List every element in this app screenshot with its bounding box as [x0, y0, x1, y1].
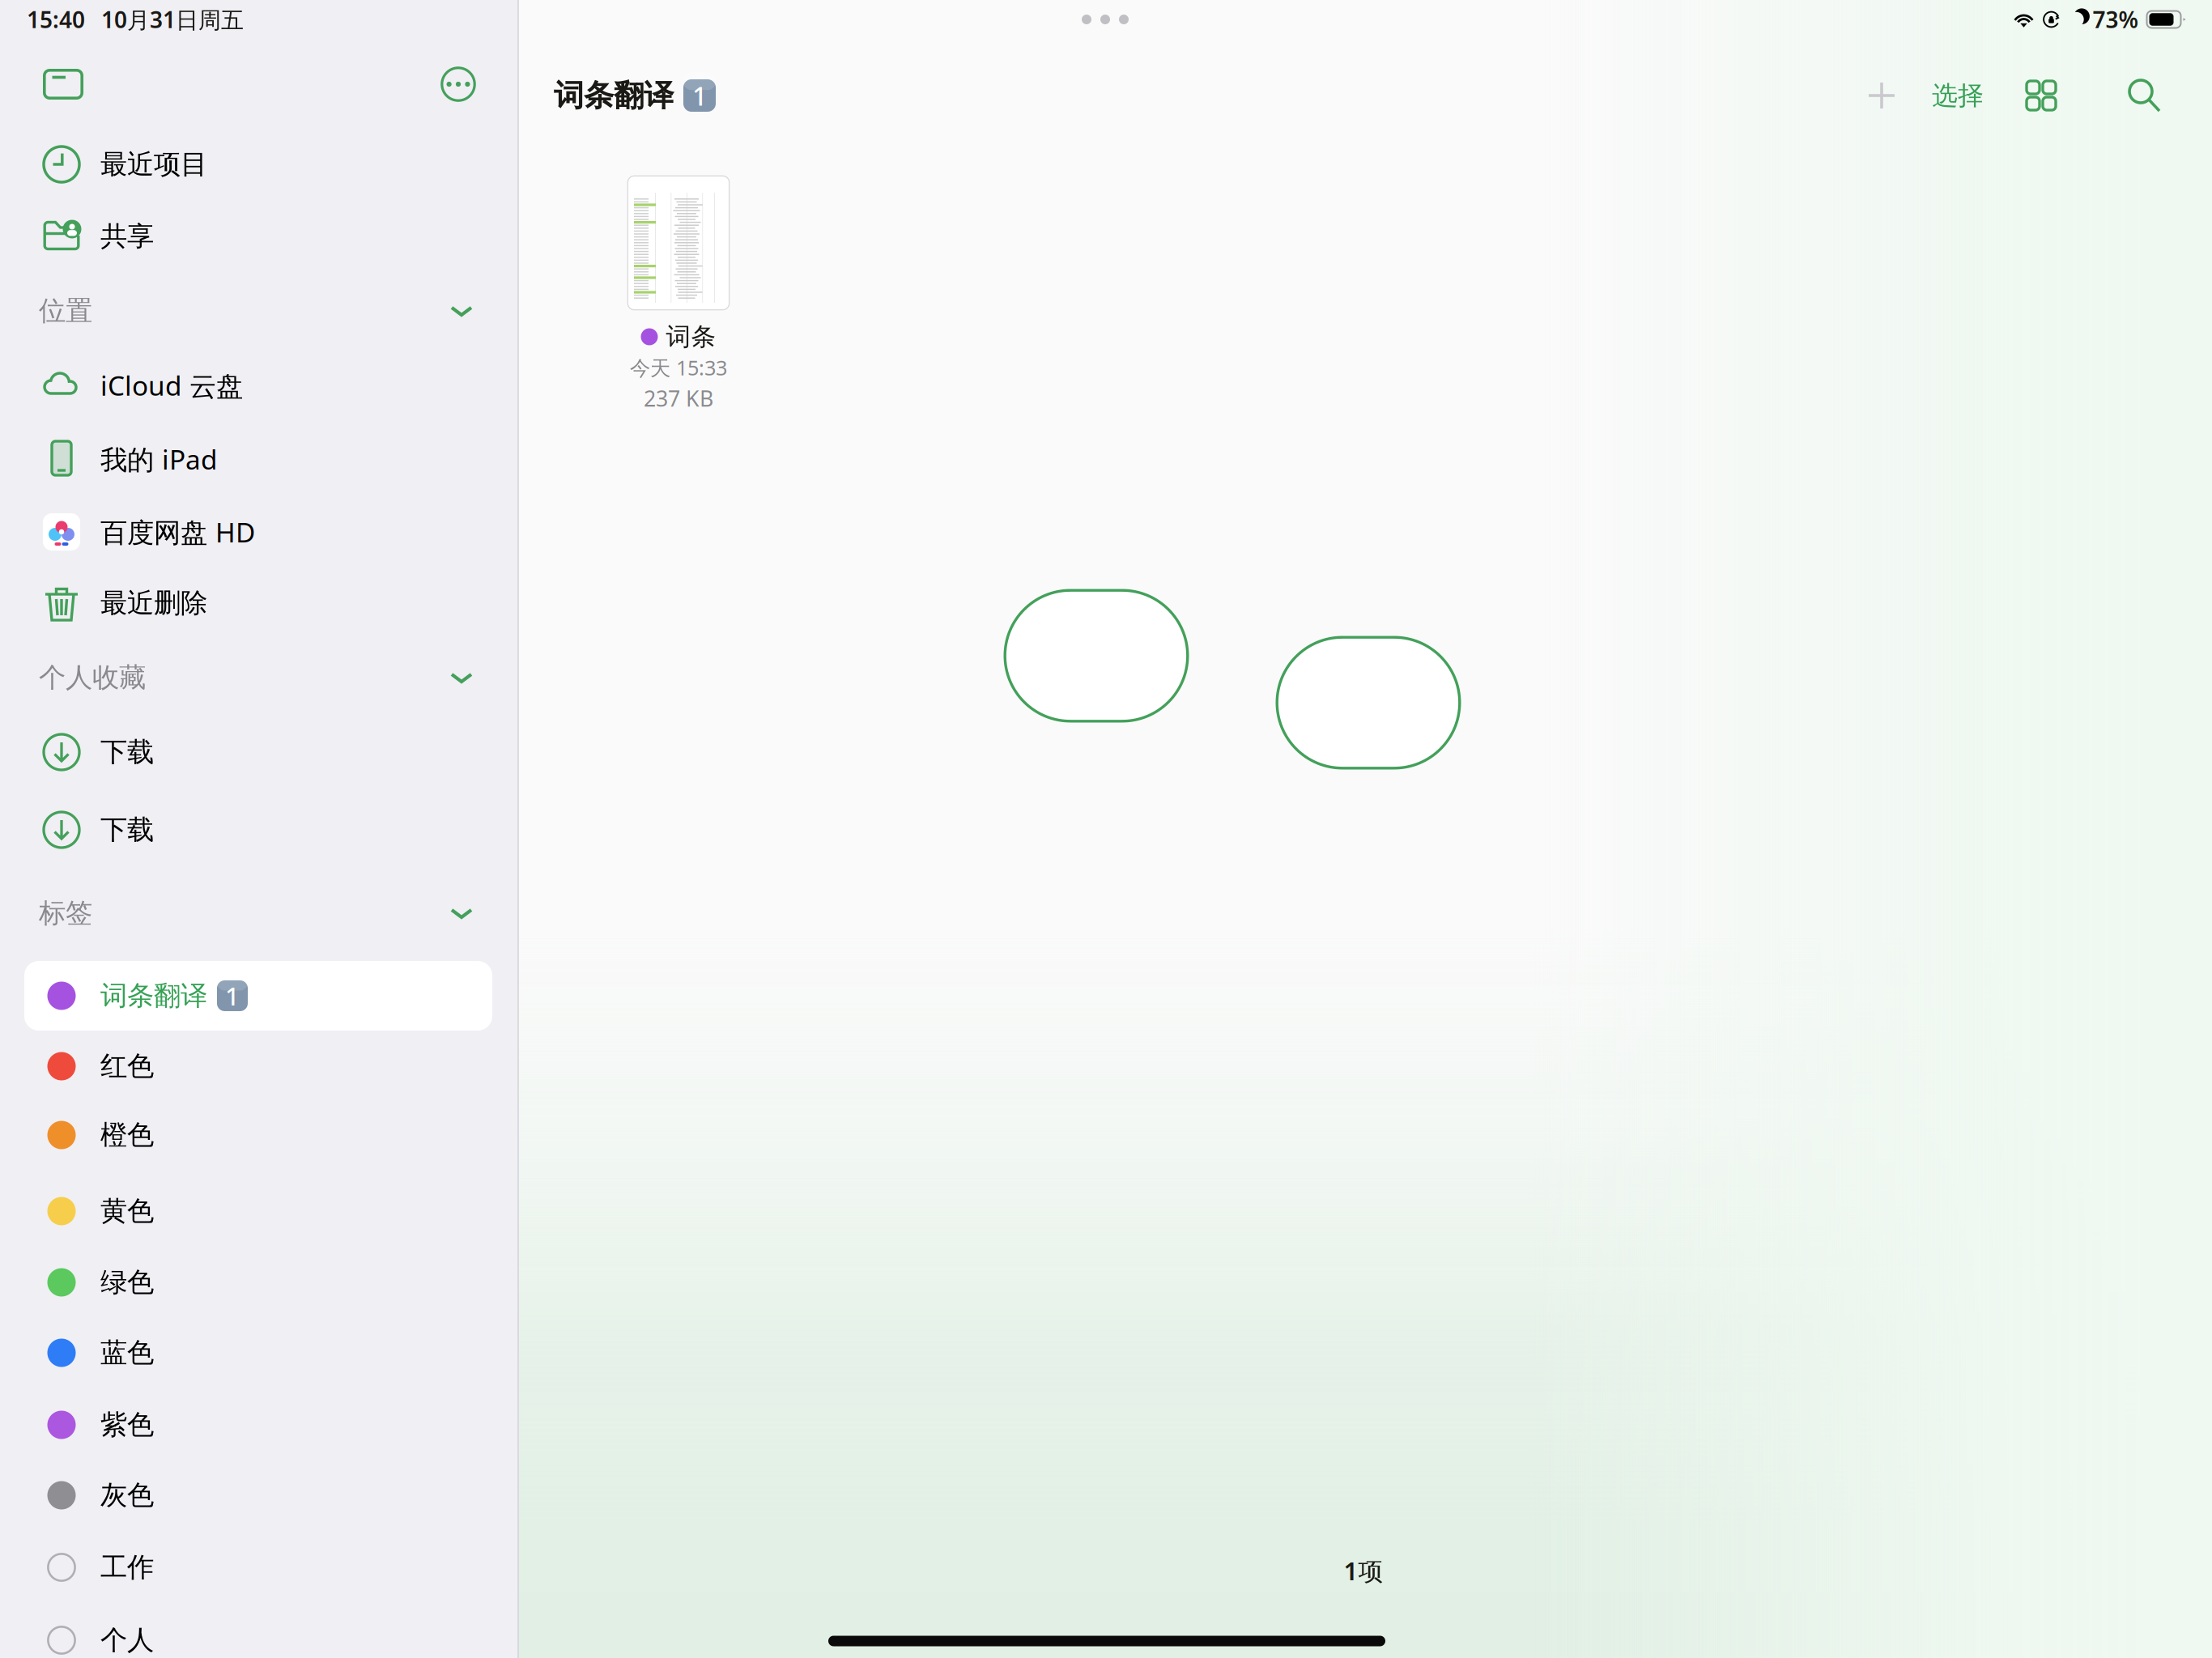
- button[interactable]: View Options: [2007, 62, 2075, 130]
- staticText: 237 KB: [644, 384, 713, 413]
- button[interactable]: Hide Sidebar: [32, 53, 94, 115]
- button[interactable]: 百度网盘 HD: [0, 496, 518, 568]
- staticText: 位置: [39, 294, 92, 327]
- staticText: 工作: [100, 1551, 154, 1584]
- staticText: 紫色: [100, 1408, 154, 1441]
- button[interactable]: Search: [2110, 62, 2178, 130]
- staticText: 1项: [1344, 1554, 1383, 1587]
- staticText: 个人收藏: [39, 661, 146, 694]
- staticText: 词条: [666, 322, 716, 352]
- button[interactable]: 个人: [0, 1605, 518, 1658]
- staticText: 灰色: [100, 1479, 154, 1512]
- staticText: 个人: [100, 1624, 154, 1657]
- button[interactable]: 紫色: [0, 1389, 518, 1460]
- button[interactable]: 工作: [0, 1532, 518, 1603]
- button[interactable]: More Options: [428, 53, 489, 115]
- button[interactable]: iCloud 云盘: [0, 350, 518, 421]
- button[interactable]: 红色: [0, 1031, 518, 1102]
- button[interactable]: 选择: [1913, 62, 2002, 130]
- button[interactable]: 词条翻译: [0, 960, 518, 1031]
- button[interactable]: 蓝色: [0, 1317, 518, 1388]
- staticText: 黄色: [100, 1195, 154, 1228]
- staticText: 下载: [100, 813, 154, 846]
- button[interactable]: 下载: [0, 716, 518, 788]
- staticText: 词条翻译: [100, 979, 207, 1012]
- staticText: 下载: [100, 735, 154, 769]
- button[interactable]: Collapse 位置: [440, 290, 483, 332]
- staticText: 1: [225, 979, 240, 1012]
- staticText: 红色: [100, 1050, 154, 1083]
- staticText: 共享: [100, 220, 154, 253]
- button[interactable]: 灰色: [0, 1460, 518, 1531]
- staticText: 绿色: [100, 1266, 154, 1299]
- button[interactable]: 最近项目: [0, 129, 518, 200]
- staticText: 我的 iPad: [100, 441, 218, 477]
- staticText: 百度网盘 HD: [100, 514, 255, 550]
- staticText: 最近删除: [100, 587, 207, 620]
- staticText: 标签: [39, 897, 92, 930]
- button[interactable]: 共享: [0, 201, 518, 272]
- button[interactable]: Collapse 个人收藏: [440, 657, 483, 699]
- button[interactable]: 橙色: [0, 1099, 518, 1171]
- button[interactable]: Collapse 标签: [440, 892, 483, 934]
- staticText: 1: [692, 78, 707, 113]
- button[interactable]: 下载: [0, 794, 518, 865]
- button[interactable]: 黄色: [0, 1175, 518, 1247]
- button[interactable]: 绿色: [0, 1247, 518, 1318]
- staticText: 橙色: [100, 1118, 154, 1152]
- staticText: 15:40: [27, 4, 85, 34]
- staticText: 最近项目: [100, 148, 207, 181]
- staticText: 蓝色: [100, 1336, 154, 1369]
- button[interactable]: 我的 iPad: [0, 423, 518, 495]
- staticText: 73%: [2093, 4, 2139, 34]
- staticText: 选择: [1932, 80, 1984, 111]
- staticText: 词条翻译: [554, 77, 674, 114]
- button[interactable]: 最近删除: [0, 568, 518, 639]
- button[interactable]: New Item: [1848, 62, 1916, 130]
- staticText: iCloud 云盘: [100, 367, 243, 403]
- staticText: 今天 15:33: [630, 354, 727, 381]
- button[interactable]: 词条: [581, 163, 776, 430]
- staticText: 10月31日周五: [101, 4, 244, 34]
